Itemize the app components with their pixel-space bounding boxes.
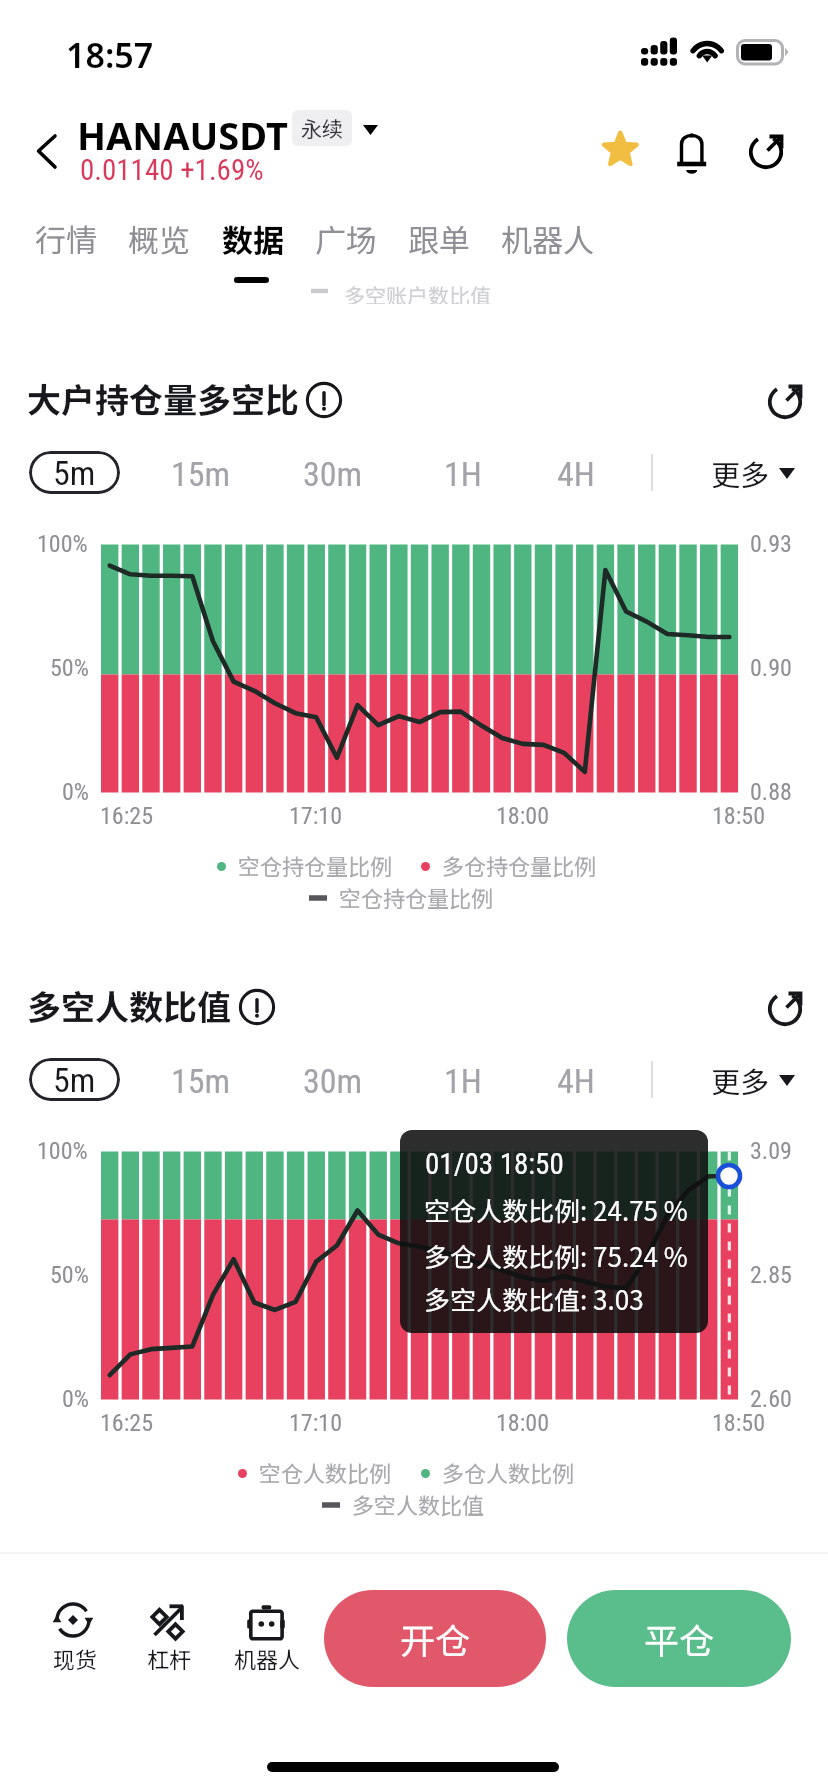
button[interactable]: Back [18, 118, 78, 184]
button[interactable]: Expand holdings chart [759, 372, 815, 428]
staticText: 现货 [53, 1642, 98, 1674]
staticText: 0.90 [750, 654, 792, 682]
button[interactable] [287, 451, 381, 494]
staticText: 杠杆 [147, 1642, 192, 1674]
button[interactable]: 平仓 [567, 1590, 791, 1687]
staticText: 行情 [35, 216, 97, 261]
staticText: 多空人数比值 [352, 1488, 485, 1520]
button[interactable] [541, 451, 635, 494]
button[interactable]: Spot [28, 1592, 120, 1674]
staticText: 多空人数比值 [27, 981, 231, 1030]
button[interactable] [305, 212, 391, 262]
button[interactable]: Leverage [122, 1592, 214, 1674]
staticText: 16:25 [100, 802, 153, 830]
staticText: 1H [444, 454, 482, 494]
button[interactable] [398, 212, 484, 262]
button[interactable]: 开仓 [324, 1590, 546, 1687]
staticText: 0.93 [750, 530, 792, 558]
staticText: 多仓持仓量比例 [442, 849, 597, 881]
staticText: 大户持仓量多空比 [27, 374, 299, 423]
button[interactable] [287, 1058, 381, 1101]
staticText: 空仓人数比例 [259, 1456, 392, 1488]
staticText: 01/03 18:50 [425, 1147, 564, 1181]
button[interactable] [428, 1058, 522, 1101]
button[interactable]: 5m [29, 451, 120, 494]
staticText: 18:50 [712, 802, 765, 830]
staticText: 空仓人数比例: 24.75 % [424, 1191, 688, 1229]
staticText: 跟单 [408, 216, 470, 261]
staticText: 0% [62, 1385, 90, 1413]
staticText: 18:00 [496, 802, 549, 830]
staticText: 50% [50, 1261, 89, 1289]
button[interactable]: Expand ratio chart [759, 979, 815, 1035]
staticText: 更多 [711, 452, 770, 494]
staticText: 16:25 [100, 1409, 153, 1437]
staticText: 15m [171, 454, 231, 494]
staticText: 空仓持仓量比例 [339, 881, 494, 913]
staticText: 机器人 [501, 216, 594, 261]
staticText: 多空人数比值: 3.03 [424, 1280, 644, 1318]
staticText: 100% [37, 530, 88, 558]
staticText: 4H [557, 454, 595, 494]
staticText: 30m [303, 1061, 363, 1101]
staticText: 0% [62, 778, 90, 806]
staticText: 18:50 [712, 1409, 765, 1437]
staticText: 概览 [128, 216, 190, 261]
staticText: 广场 [315, 216, 377, 261]
staticText: 多空账户数比值 [344, 284, 491, 304]
staticText: 0.01140 +1.69% [80, 153, 264, 187]
staticText: 5m [53, 453, 96, 493]
staticText: 多仓人数比例 [442, 1456, 575, 1488]
staticText: 18:00 [496, 1409, 549, 1437]
staticText: 5m [53, 1060, 96, 1100]
staticText: 17:10 [289, 1409, 342, 1437]
button[interactable]: Favorite [592, 122, 648, 178]
button[interactable] [428, 451, 522, 494]
staticText: 开仓 [400, 1613, 471, 1664]
button[interactable]: Share [740, 122, 796, 178]
staticText: 3.09 [750, 1137, 792, 1165]
button[interactable] [155, 1058, 249, 1101]
staticText: HANAUSDT [77, 109, 288, 161]
staticText: 数据 [222, 216, 284, 261]
staticText: 更多 [711, 1059, 770, 1101]
staticText: 空仓持仓量比例 [238, 849, 393, 881]
staticText: 4H [557, 1061, 595, 1101]
staticText: 机器人 [234, 1642, 301, 1674]
button[interactable] [118, 212, 204, 262]
button[interactable] [700, 1058, 808, 1101]
staticText: 0.88 [750, 778, 792, 806]
button[interactable] [25, 212, 111, 262]
staticText: 18:57 [66, 32, 154, 78]
staticText: 50% [50, 654, 89, 682]
button[interactable]: Bot [220, 1592, 312, 1674]
button[interactable]: Notifications [664, 122, 720, 178]
button[interactable] [491, 212, 609, 262]
button[interactable] [700, 451, 808, 494]
button[interactable] [155, 451, 249, 494]
staticText: 2.60 [750, 1385, 792, 1413]
button[interactable]: 5m [29, 1058, 120, 1101]
button[interactable] [541, 1058, 635, 1101]
staticText: 平仓 [644, 1613, 715, 1664]
staticText: 17:10 [289, 802, 342, 830]
staticText: 100% [37, 1137, 88, 1165]
staticText: 15m [171, 1061, 231, 1101]
staticText: 30m [303, 454, 363, 494]
staticText: 多仓人数比例: 75.24 % [424, 1237, 688, 1275]
staticText: 永续 [301, 113, 343, 143]
staticText: 2.85 [750, 1261, 792, 1289]
button[interactable] [212, 212, 298, 262]
staticText: 1H [444, 1061, 482, 1101]
